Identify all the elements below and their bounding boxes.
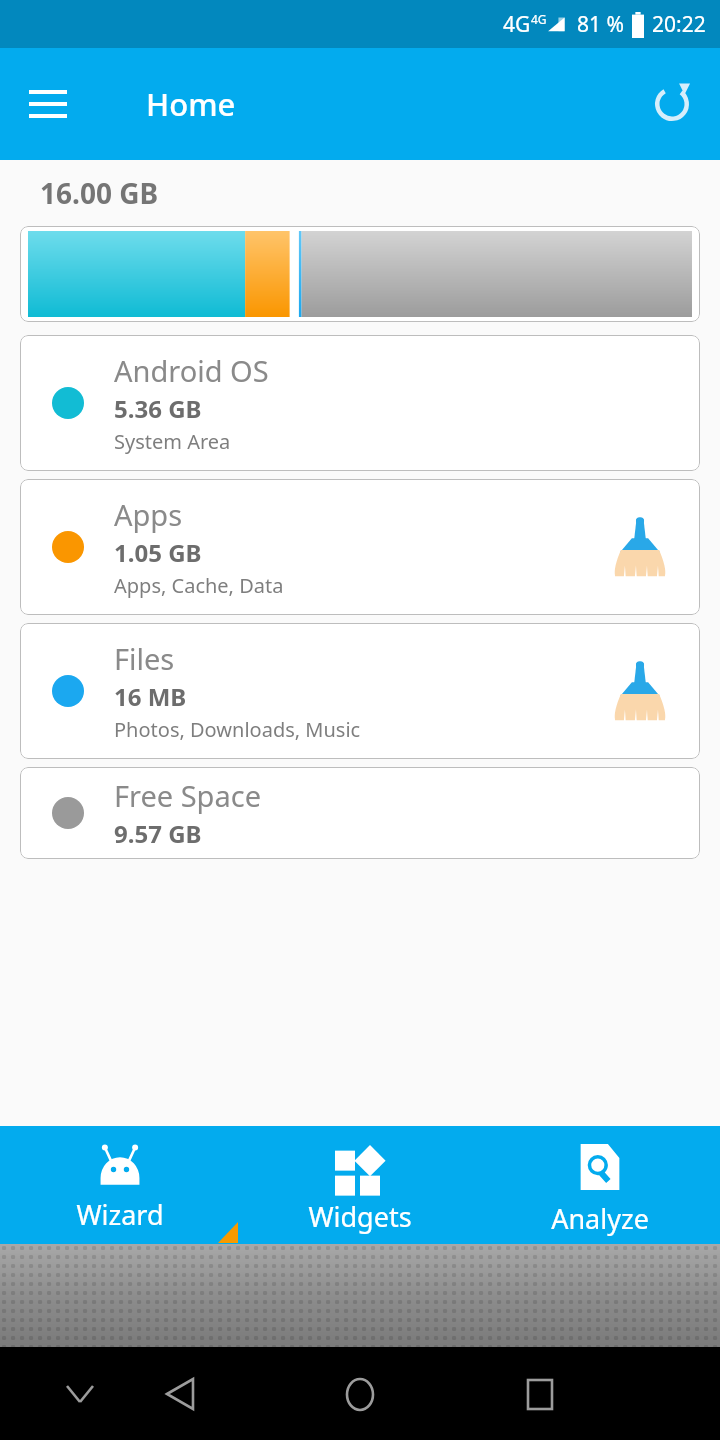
staticText: 81 % [577, 10, 624, 39]
staticText: Analyze [551, 1200, 649, 1237]
button[interactable]: Recent apps [504, 1358, 576, 1430]
staticText: Android OS [114, 351, 269, 390]
button[interactable]: Wizard [0, 1126, 240, 1244]
staticText: 9.57 GB [114, 817, 202, 850]
button[interactable]: Widgets [240, 1126, 480, 1244]
button[interactable]: Free Space [20, 767, 700, 859]
staticText: Free Space [114, 776, 262, 815]
staticText: Home [146, 83, 236, 125]
staticText: 4G [503, 10, 531, 39]
staticText: Wizard [76, 1196, 164, 1233]
button[interactable]: Clean Files [608, 659, 672, 723]
button[interactable]: Back [144, 1358, 216, 1430]
staticText: 20:22 [652, 10, 706, 39]
button[interactable] [20, 226, 700, 322]
staticText: 4G [531, 11, 547, 27]
staticText: System Area [114, 428, 231, 455]
staticText: Widgets [308, 1198, 412, 1235]
staticText: Photos, Downloads, Music [114, 716, 361, 743]
staticText: Apps, Cache, Data [114, 572, 284, 599]
button[interactable]: Open navigation menu [20, 76, 76, 132]
button[interactable]: Analyze [480, 1126, 720, 1244]
button[interactable]: Hide keyboard [44, 1358, 116, 1430]
button[interactable]: Home [324, 1358, 396, 1430]
button[interactable]: Files [20, 623, 700, 759]
button[interactable]: Refresh [644, 76, 700, 132]
staticText: 16.00 GB [40, 174, 159, 212]
button[interactable]: Apps [20, 479, 700, 615]
staticText: 5.36 GB [114, 392, 202, 425]
button[interactable]: Android OS [20, 335, 700, 471]
staticText: 16 MB [114, 680, 187, 713]
staticText: Apps [114, 495, 183, 534]
staticText: 1.05 GB [114, 536, 202, 569]
button[interactable]: Clean Apps [608, 515, 672, 579]
staticText: Files [114, 639, 175, 678]
